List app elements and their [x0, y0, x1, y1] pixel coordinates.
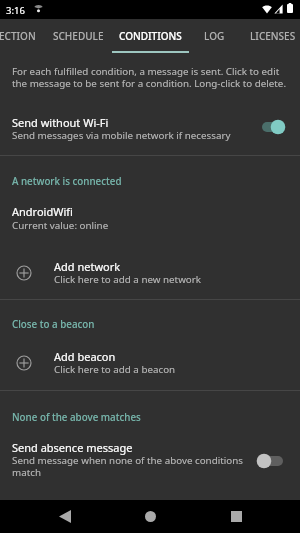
staticText: CONDITIONS — [119, 29, 182, 43]
button[interactable]: SCHEDULE — [38, 19, 116, 53]
button[interactable]: Home — [130, 500, 170, 533]
button[interactable]: LICENSES — [235, 19, 300, 53]
button[interactable]: Toggle on — [256, 116, 288, 138]
staticText: Click here to add a new network — [54, 273, 202, 286]
button[interactable]: Back — [45, 500, 85, 533]
staticText: LOG — [204, 29, 225, 43]
staticText: Add network — [54, 259, 121, 274]
staticText: LICENSES — [250, 29, 296, 43]
button[interactable]: Send absence message — [0, 435, 300, 483]
button[interactable]: Toggle off — [256, 450, 288, 472]
button[interactable]: ECTION — [0, 19, 55, 53]
staticText: Click here to add a beacon — [54, 363, 176, 376]
button[interactable]: Add beacon — [0, 346, 300, 382]
button[interactable]: CONDITIONS — [111, 19, 189, 53]
staticText: Send message when none of the above cond… — [12, 454, 243, 479]
staticText: For each fulfilled condition, a message … — [12, 65, 287, 90]
staticText: Send without Wi-Fi — [12, 115, 109, 130]
staticText: Add beacon — [54, 349, 116, 364]
staticText: Send messages via mobile network if nece… — [12, 129, 231, 142]
button[interactable]: Add network — [0, 256, 300, 292]
staticText: AndroidWifi — [12, 204, 73, 219]
button[interactable]: Send without Wi-Fi — [0, 108, 300, 150]
staticText: ECTION — [0, 29, 36, 43]
staticText: SCHEDULE — [53, 29, 104, 43]
staticText: A network is connected — [12, 175, 122, 188]
staticText: Close to a beacon — [12, 318, 95, 331]
button[interactable]: Recents — [216, 500, 256, 533]
button[interactable]: LOG — [174, 19, 252, 53]
staticText: 3:16 — [6, 4, 25, 17]
staticText: Current value: online — [12, 219, 109, 232]
staticText: Send absence message — [12, 440, 133, 455]
staticText: None of the above matches — [12, 411, 141, 424]
button[interactable]: AndroidWifi — [0, 200, 300, 236]
